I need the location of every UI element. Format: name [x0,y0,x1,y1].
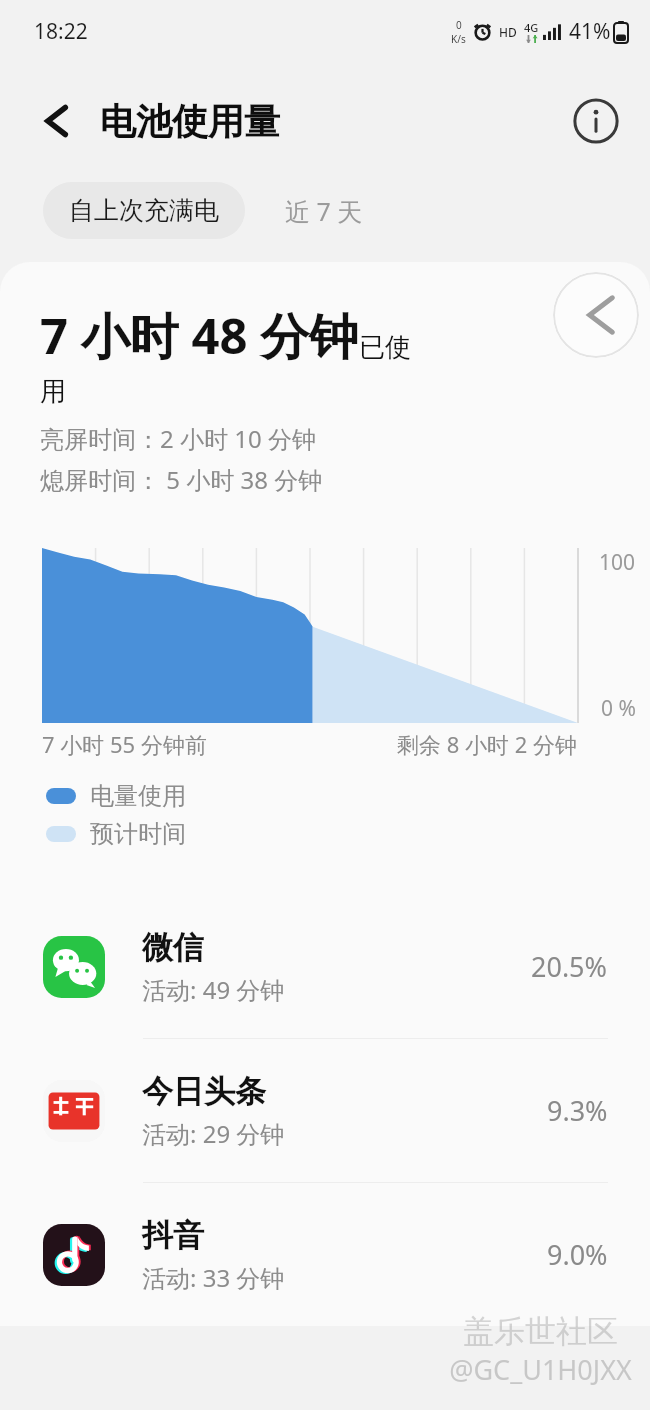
staticText: 熄屏时间： 5 小时 38 分钟 [40,463,323,496]
staticText: 自上次充满电 [69,195,219,226]
button[interactable]: Back [553,272,639,358]
staticText: 100 [599,548,636,577]
staticText: 抖音 [142,1216,204,1255]
staticText: HD [499,24,517,40]
staticText: 用 [40,375,66,408]
button[interactable]: Info [572,97,620,145]
staticText: 活动: 33 分钟 [142,1261,285,1294]
staticText: 微信 [142,928,204,967]
staticText: 41% [569,17,611,46]
staticText: K/s [451,32,466,46]
button[interactable]: 抖音 [0,1183,650,1326]
staticText: 电量使用 [90,781,186,811]
staticText: 今日头条 [142,1072,266,1111]
staticText: 0 % [601,694,636,723]
button[interactable]: 微信 [0,895,650,1038]
staticText: 0 [456,18,462,32]
staticText: 18:22 [34,17,88,46]
button[interactable]: 今日头条 [0,1039,650,1182]
staticText: 4G [524,20,539,35]
button[interactable]: 自上次充满电 [43,182,245,239]
staticText: 7 小时 48 分钟 [40,302,359,369]
staticText: 9.3% [547,1092,608,1129]
staticText: 20.5% [531,948,608,985]
button[interactable]: 近 7 天 [245,182,403,239]
staticText: 预计时间 [90,819,186,849]
staticText: 活动: 29 分钟 [142,1117,285,1150]
staticText: 活动: 49 分钟 [142,973,285,1006]
staticText: 剩余 8 小时 2 分钟 [397,729,578,759]
staticText: 电池使用量 [100,99,280,144]
staticText: 亮屏时间：2 小时 10 分钟 [40,422,316,455]
staticText: 盖乐世社区 [463,1312,618,1351]
staticText: @GC_U1H0JXX [449,1351,632,1388]
staticText: 近 7 天 [285,194,363,228]
button[interactable]: Navigate up [28,95,80,147]
staticText: 7 小时 55 分钟前 [42,729,207,759]
staticText: 9.0% [547,1236,608,1273]
staticText: 已使 [359,331,411,364]
